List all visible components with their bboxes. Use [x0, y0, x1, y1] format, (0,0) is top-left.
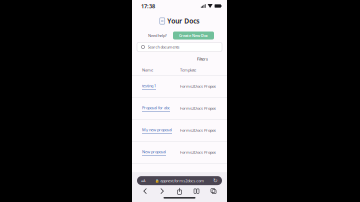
button[interactable]: testing 1 [142, 83, 156, 89]
staticText: ᴀA [141, 178, 146, 183]
button[interactable]: Filters [194, 55, 211, 63]
button[interactable]: Proposal for abc [142, 105, 170, 111]
button[interactable]: Share [175, 187, 184, 196]
button[interactable]: New proposal [142, 149, 166, 155]
staticText: testing 1 [142, 83, 156, 88]
staticText: Proposal for abc [142, 105, 170, 110]
staticText: Search documents [147, 44, 179, 50]
staticText: Template [180, 67, 196, 73]
staticText: 17:38 [141, 2, 155, 10]
button[interactable]: Bookmarks [192, 187, 201, 196]
staticText: Create New Doc [179, 33, 208, 38]
staticText: appnext.forms2docs.com [160, 178, 204, 183]
staticText: ↻ [213, 177, 218, 184]
staticText: Need help? [148, 33, 167, 38]
staticText: Name [142, 67, 153, 73]
staticText: My new proposal [142, 127, 172, 132]
button[interactable]: Create New Doc [173, 31, 214, 39]
staticText: Forms2Docs Propos [180, 83, 216, 89]
staticText: New proposal [142, 149, 166, 154]
staticText: 🔒 [155, 179, 159, 183]
button[interactable]: Search documents [137, 42, 222, 51]
button[interactable]: Tabs [209, 187, 218, 196]
staticText: Forms2Docs Propos [180, 127, 216, 133]
staticText: Your Docs [167, 16, 199, 26]
staticText: Forms2Docs Propos [180, 105, 216, 111]
button[interactable]: My new proposal [142, 127, 172, 133]
button[interactable]: ᴀA [137, 176, 222, 185]
button[interactable]: Forward [158, 187, 167, 196]
staticText: Forms2Docs Propos [180, 149, 216, 155]
staticText: Filters [197, 56, 208, 62]
button[interactable]: Back [141, 187, 150, 196]
button[interactable]: Need help? [148, 32, 167, 39]
